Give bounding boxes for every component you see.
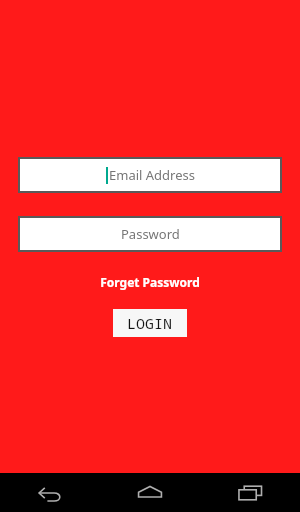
button[interactable]: Recent apps [200,473,300,512]
button[interactable]: LOGIN [113,309,187,337]
button[interactable]: Password [18,216,282,252]
staticText: LOGIN [127,313,173,333]
staticText: Password [121,225,180,243]
button[interactable]: Forget Password [94,272,206,292]
staticText: Email Address [109,166,195,184]
staticText: Forget Password [100,274,200,290]
button[interactable]: Back [0,473,100,512]
button[interactable]: Email Address [18,157,282,193]
button[interactable]: Home [100,473,200,512]
